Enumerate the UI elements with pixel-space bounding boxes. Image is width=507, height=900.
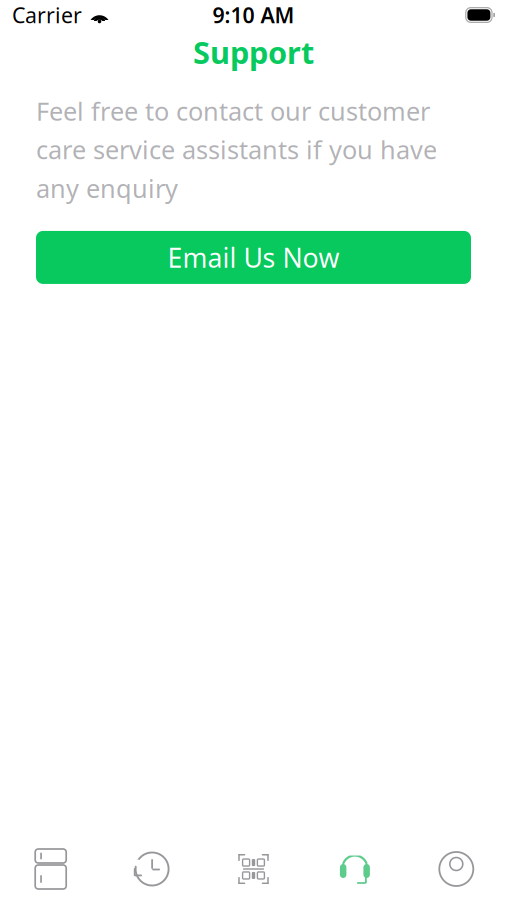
button[interactable]: Profile <box>406 841 507 897</box>
staticText: Support <box>193 32 314 72</box>
button[interactable]: Email Us Now <box>36 231 471 284</box>
staticText: 9:10 AM <box>212 1 294 29</box>
button[interactable]: History <box>101 841 203 897</box>
staticText: Feel free to contact our customer care s… <box>36 94 437 205</box>
button[interactable]: Fridge <box>0 841 101 897</box>
staticText: Carrier <box>12 1 82 29</box>
button[interactable]: Scan QR Code <box>203 841 304 897</box>
staticText: Email Us Now <box>167 240 339 275</box>
button[interactable]: Support <box>304 841 406 897</box>
